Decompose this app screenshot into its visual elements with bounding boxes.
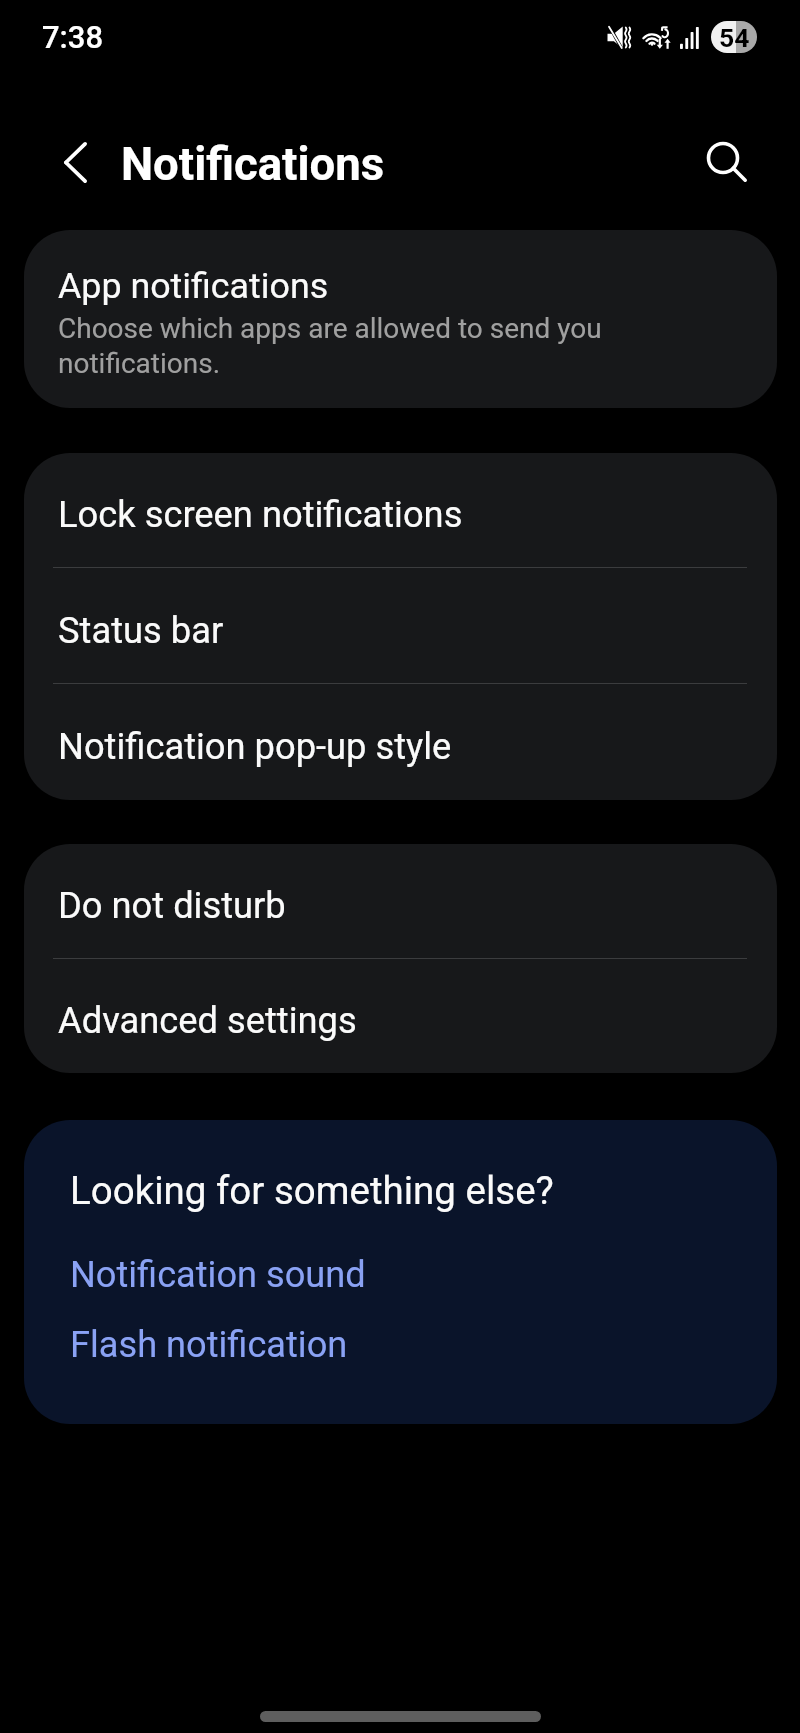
button[interactable]: App notifications — [24, 230, 777, 408]
staticText: 54 — [719, 22, 750, 53]
button[interactable]: Advanced settings — [24, 960, 777, 1073]
staticText: Flash notification — [70, 1323, 348, 1365]
button[interactable]: Do not disturb — [24, 844, 777, 959]
button[interactable]: Search — [700, 135, 756, 191]
button[interactable]: Back — [46, 133, 104, 191]
button[interactable]: Notification pop-up style — [24, 685, 777, 800]
staticText: Lock screen notifications — [58, 493, 463, 536]
staticText: Advanced settings — [58, 999, 357, 1042]
button[interactable]: Status bar — [24, 569, 777, 684]
staticText: Looking for something else? — [70, 1168, 554, 1213]
staticText: Status bar — [58, 609, 224, 652]
staticText: Notification pop-up style — [58, 725, 452, 768]
staticText: Notifications — [121, 138, 385, 191]
staticText: 7:38 — [42, 19, 104, 55]
staticText: Choose which apps are allowed to send yo… — [58, 312, 737, 380]
staticText: Notification sound — [70, 1253, 366, 1295]
button[interactable]: Lock screen notifications — [24, 453, 777, 568]
button[interactable]: Flash notification — [70, 1323, 743, 1365]
staticText: Do not disturb — [58, 884, 286, 927]
button[interactable]: Notification sound — [70, 1253, 743, 1295]
staticText: App notifications — [58, 265, 329, 307]
